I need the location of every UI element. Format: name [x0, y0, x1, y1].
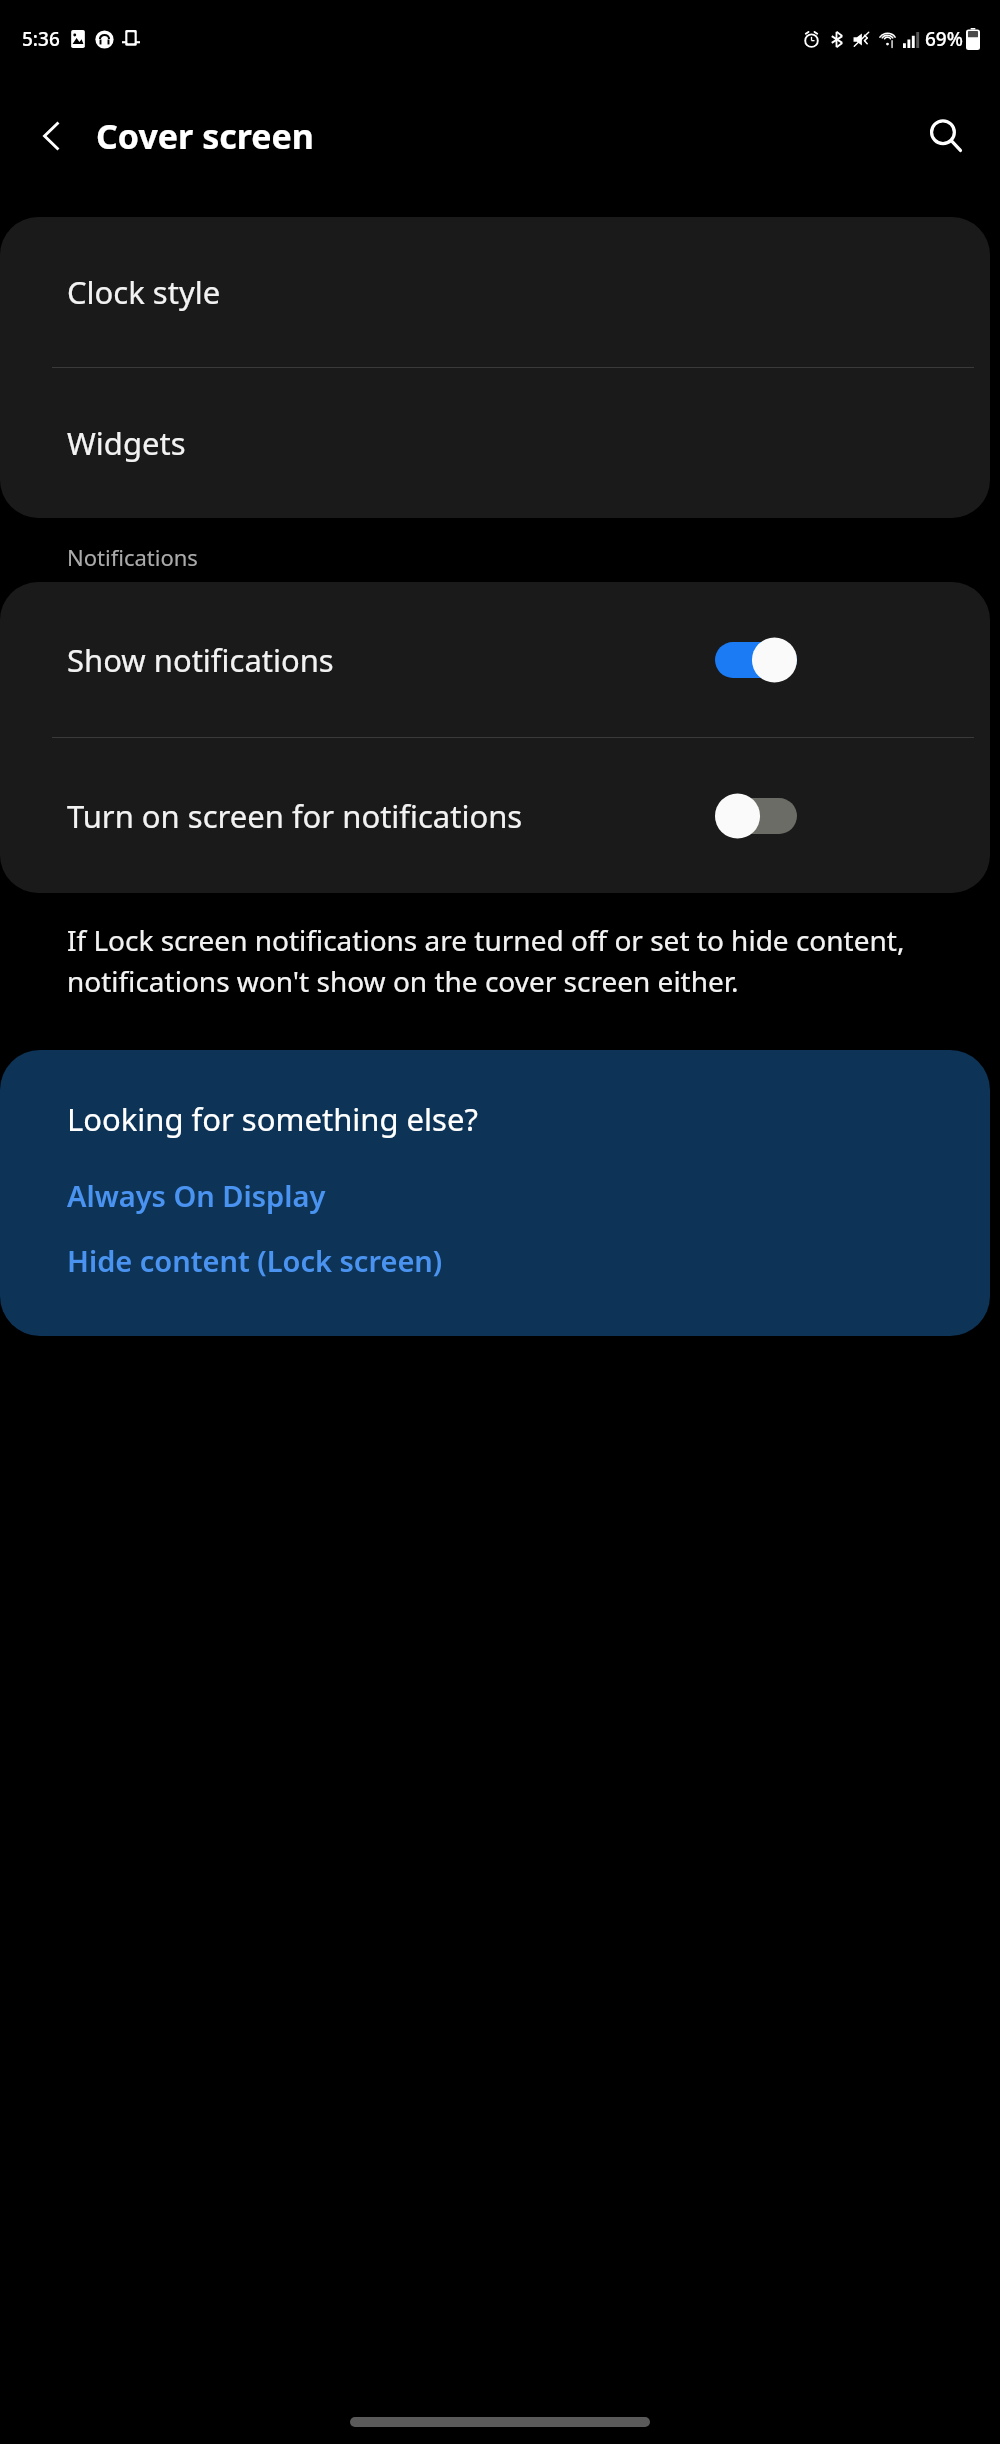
staticText: Notifications [67, 542, 198, 572]
staticText: Show notifications [67, 639, 707, 681]
staticText: Clock style [67, 271, 221, 313]
button[interactable]: Widgets [0, 368, 990, 518]
button[interactable]: Clock style [0, 217, 990, 367]
staticText: Cover screen [96, 113, 314, 159]
staticText: Always On Display [67, 1176, 326, 1215]
staticText: Hide content (Lock screen) [67, 1241, 443, 1280]
staticText: 5:36 [22, 26, 60, 52]
staticText: Turn on screen for notifications [67, 795, 707, 837]
button[interactable]: Search [908, 98, 984, 174]
button[interactable]: Turn on screen for notifications [0, 738, 990, 893]
staticText: Widgets [67, 422, 186, 464]
staticText: If Lock screen notifications are turned … [67, 921, 940, 1000]
staticText: 69% [925, 26, 963, 52]
button[interactable]: Show notifications [0, 582, 990, 737]
staticText: Looking for something else? [67, 1098, 478, 1140]
button[interactable]: Hide content (Lock screen) [67, 1241, 443, 1280]
button[interactable]: Back [14, 98, 90, 174]
button[interactable]: Always On Display [67, 1176, 326, 1215]
